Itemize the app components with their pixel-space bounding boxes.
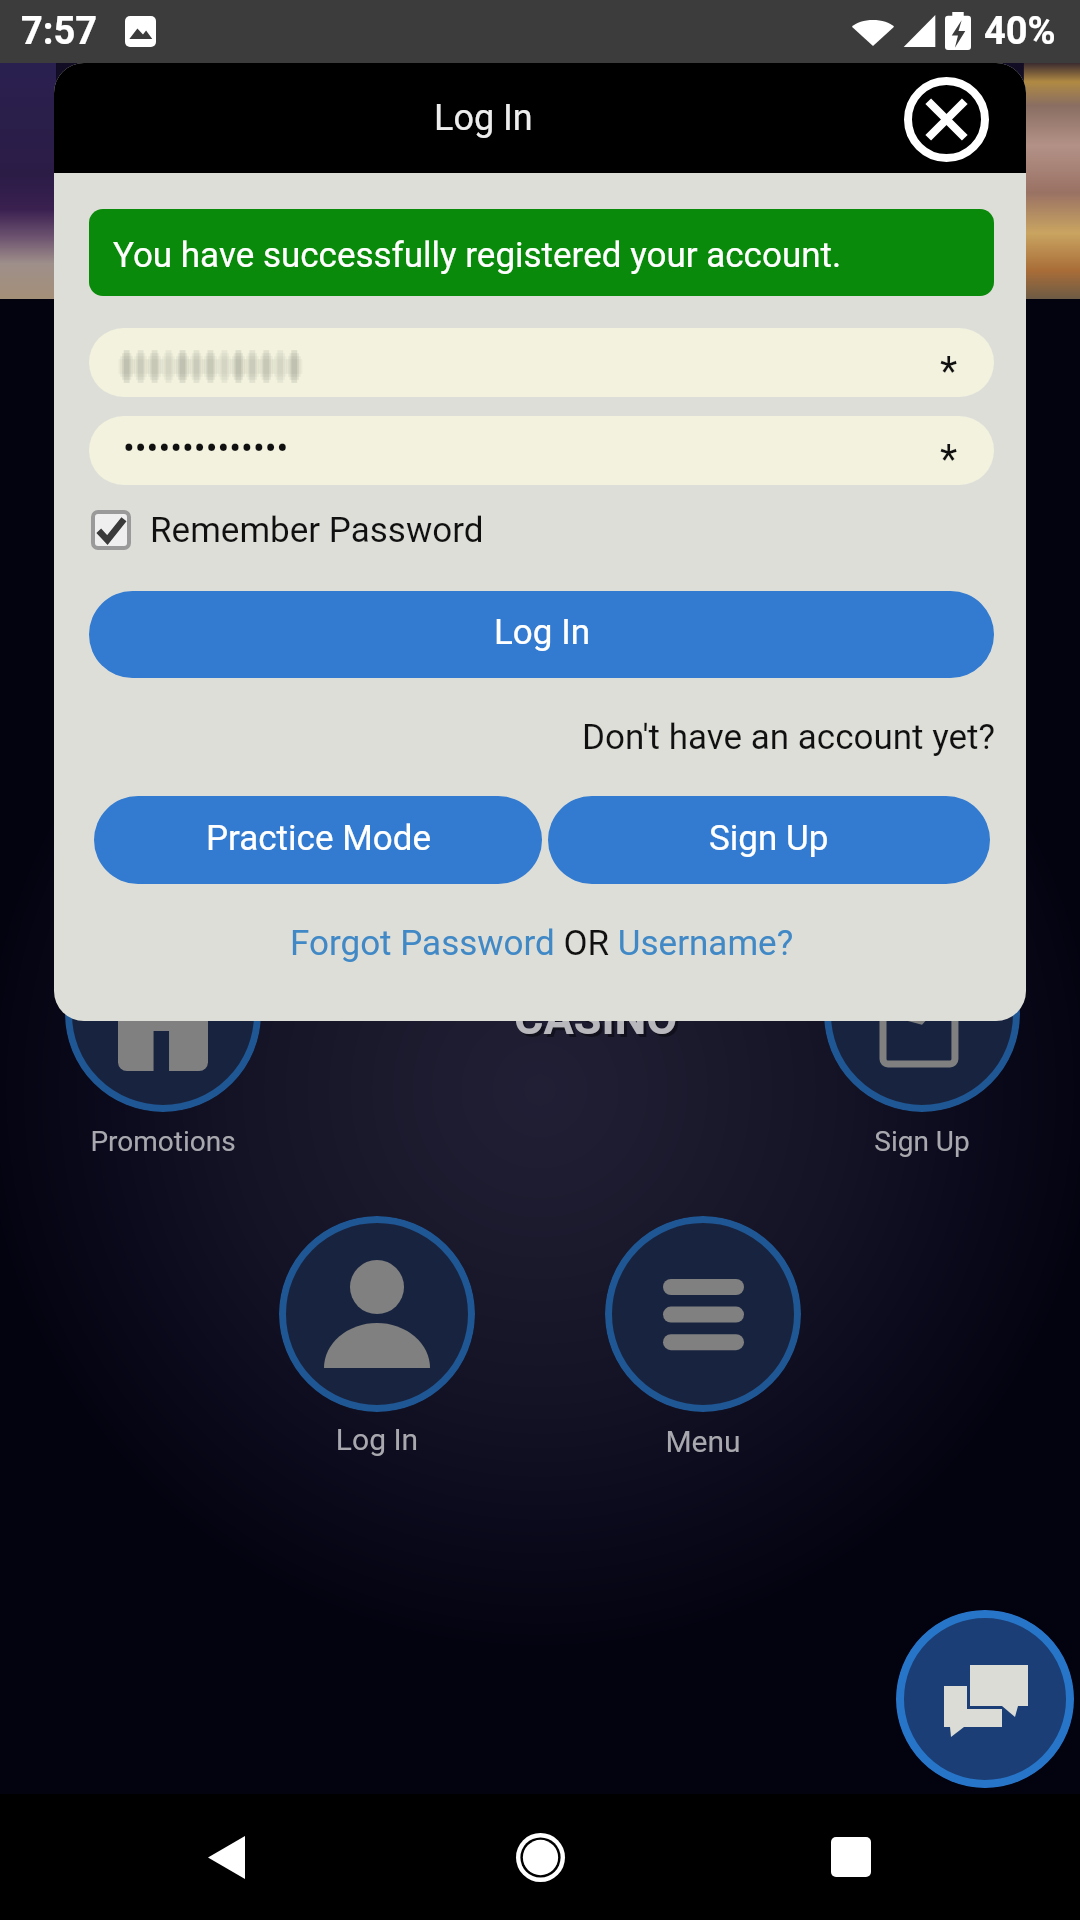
staticText: CASINO [514, 992, 678, 1045]
staticText: •••••••••••••• [123, 428, 289, 469]
button[interactable]: Recent apps [805, 1811, 897, 1903]
staticText: 40% [984, 9, 1056, 54]
staticText: CASINO [517, 995, 681, 1048]
button[interactable]: Live chat [896, 1610, 1074, 1788]
staticText: * [940, 436, 958, 483]
staticText: Sign Up [709, 818, 829, 859]
button[interactable]: Close [898, 71, 994, 167]
button[interactable]: Home [494, 1811, 586, 1903]
staticText: * [940, 348, 958, 395]
staticText: Menu [503, 1424, 903, 1459]
button[interactable]: •••••••••••••• [89, 416, 994, 485]
button[interactable]: Remember Password [93, 506, 484, 554]
staticText: Log In [177, 1422, 577, 1457]
staticText: Log In [434, 97, 533, 139]
button[interactable]: Sign Up [548, 796, 990, 884]
button[interactable]: Practice Mode [94, 796, 542, 884]
staticText: Practice Mode [206, 818, 431, 859]
button[interactable] [605, 1216, 801, 1412]
button[interactable]: * [89, 328, 994, 397]
button[interactable]: Forgot Password OR Username? [290, 923, 794, 964]
staticText: Sign Up [722, 1125, 1080, 1158]
button[interactable]: Back [180, 1811, 272, 1903]
staticText: Don't have an account yet? [582, 717, 996, 758]
button[interactable] [279, 1216, 475, 1412]
button[interactable] [824, 916, 1020, 1112]
staticText: Log In [494, 612, 590, 653]
staticText: You have successfully registered your ac… [113, 235, 842, 276]
staticText: 7:57 [21, 9, 98, 54]
staticText: Remember Password [150, 510, 484, 551]
button[interactable] [65, 916, 261, 1112]
button[interactable]: Log In [89, 591, 994, 678]
staticText: Promotions [0, 1125, 363, 1158]
